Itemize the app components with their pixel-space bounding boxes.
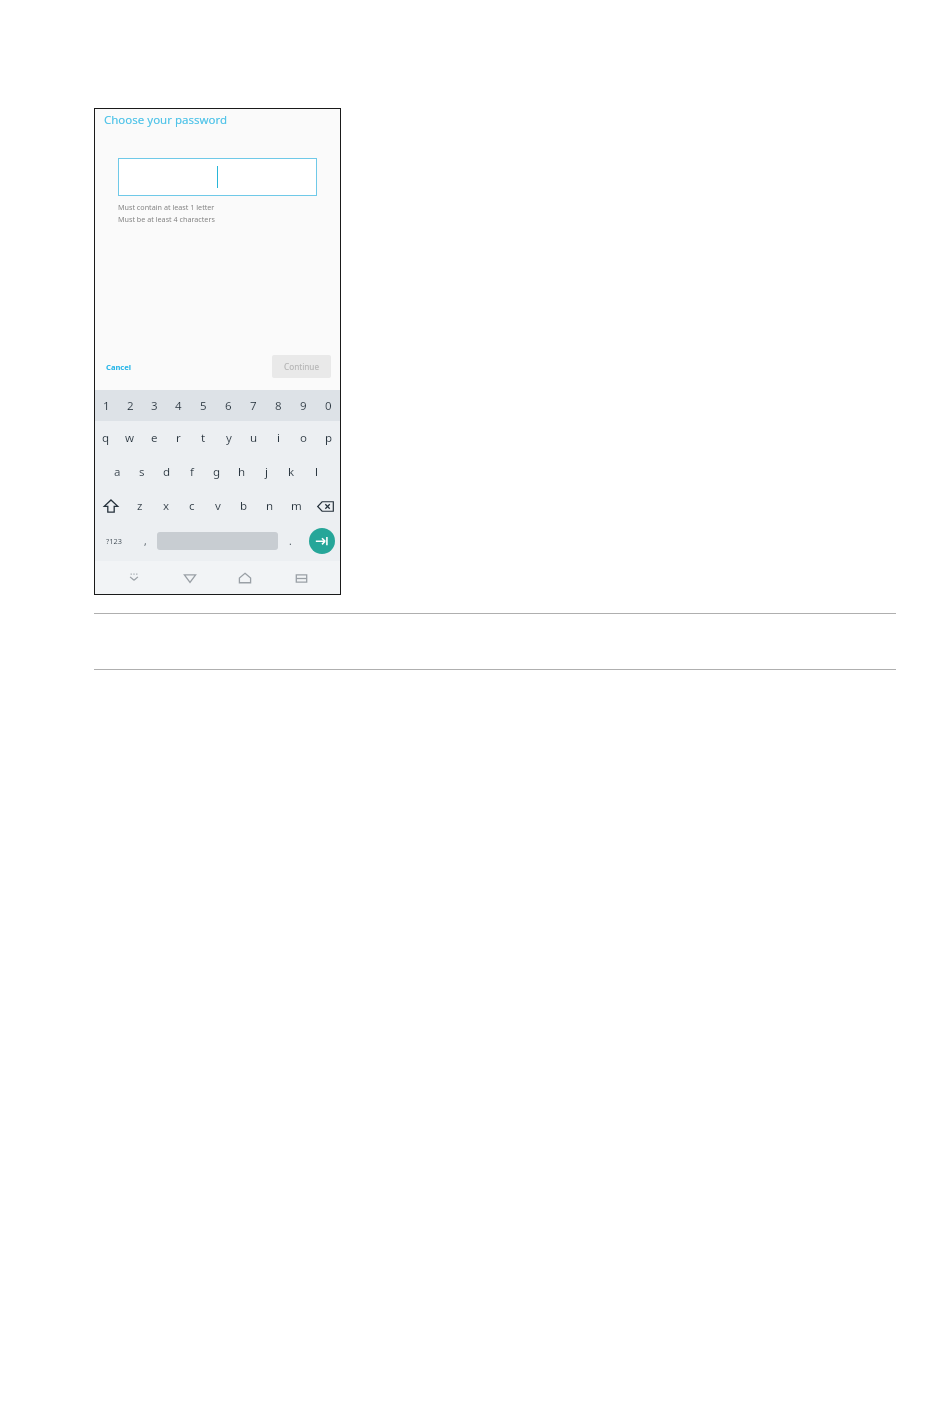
staticText: 5 xyxy=(200,398,207,414)
button[interactable]: b xyxy=(231,489,257,523)
staticText: Choose your password xyxy=(104,112,228,128)
button[interactable]: 2 xyxy=(118,390,142,421)
button[interactable]: Enter xyxy=(309,528,335,554)
staticText: , xyxy=(144,534,147,548)
staticText: z xyxy=(137,498,143,514)
staticText: k xyxy=(288,464,295,480)
button[interactable]: Recents xyxy=(285,562,317,594)
button[interactable]: m xyxy=(283,489,309,523)
staticText: 2 xyxy=(127,398,134,414)
button[interactable]: j xyxy=(254,455,279,489)
staticText: Continue xyxy=(284,361,319,372)
button[interactable]: l xyxy=(304,455,329,489)
button[interactable]: u xyxy=(241,421,266,455)
button[interactable]: 9 xyxy=(291,390,316,421)
button[interactable]: 1 xyxy=(94,390,118,421)
staticText: b xyxy=(240,498,248,514)
button[interactable]: s xyxy=(129,455,154,489)
button[interactable]: t xyxy=(191,421,216,455)
staticText: l xyxy=(315,464,318,480)
staticText: 9 xyxy=(300,398,307,414)
button[interactable]: x xyxy=(153,489,179,523)
staticText: w xyxy=(125,430,135,446)
button[interactable]: p xyxy=(316,421,341,455)
button[interactable]: z xyxy=(127,489,153,523)
staticText: . xyxy=(289,534,292,548)
button[interactable]: e xyxy=(142,421,166,455)
button[interactable]: ?123 xyxy=(94,523,133,559)
button[interactable] xyxy=(118,158,317,196)
staticText: v xyxy=(215,498,221,514)
button[interactable]: Hide keyboard xyxy=(118,562,150,594)
staticText: i xyxy=(277,430,280,446)
button[interactable]: i xyxy=(266,421,291,455)
button[interactable]: 6 xyxy=(216,390,241,421)
staticText: j xyxy=(265,464,268,480)
button[interactable]: 7 xyxy=(241,390,266,421)
button[interactable]: n xyxy=(257,489,283,523)
staticText: ?123 xyxy=(106,536,122,546)
button[interactable]: h xyxy=(229,455,254,489)
staticText: t xyxy=(201,430,206,446)
button[interactable]: Continue xyxy=(272,355,331,378)
staticText: Must be at least 4 characters xyxy=(118,214,215,224)
button[interactable]: 3 xyxy=(142,390,166,421)
staticText: g xyxy=(213,464,221,480)
staticText: 3 xyxy=(151,398,158,414)
staticText: d xyxy=(163,464,171,480)
button[interactable]: 0 xyxy=(316,390,341,421)
button[interactable]: v xyxy=(205,489,231,523)
button[interactable]: w xyxy=(118,421,142,455)
button[interactable]: Backspace xyxy=(309,489,341,523)
button[interactable]: . xyxy=(278,523,302,559)
staticText: 6 xyxy=(225,398,232,414)
button[interactable]: 4 xyxy=(166,390,191,421)
button[interactable]: c xyxy=(179,489,205,523)
button[interactable]: g xyxy=(204,455,229,489)
button[interactable]: o xyxy=(291,421,316,455)
staticText: h xyxy=(238,464,246,480)
button[interactable]: 5 xyxy=(191,390,216,421)
staticText: u xyxy=(250,430,258,446)
staticText: n xyxy=(266,498,274,514)
staticText: c xyxy=(189,498,195,514)
staticText: Must contain at least 1 letter xyxy=(118,202,215,212)
staticText: s xyxy=(139,464,145,480)
button[interactable]: , xyxy=(133,523,157,559)
button[interactable]: Shift xyxy=(94,489,127,523)
button[interactable]: a xyxy=(105,455,129,489)
staticText: m xyxy=(291,498,302,514)
button[interactable]: k xyxy=(279,455,304,489)
button[interactable]: Back xyxy=(174,562,206,594)
staticText: y xyxy=(226,430,232,446)
staticText: o xyxy=(300,430,307,446)
staticText: q xyxy=(102,430,110,446)
staticText: r xyxy=(176,430,181,446)
button[interactable]: q xyxy=(94,421,118,455)
staticText: 0 xyxy=(325,398,332,414)
button[interactable]: 8 xyxy=(266,390,291,421)
staticText: e xyxy=(151,430,158,446)
staticText: Cancel xyxy=(106,362,132,372)
button[interactable]: Cancel xyxy=(104,358,134,376)
staticText: a xyxy=(114,464,121,480)
button[interactable]: r xyxy=(166,421,191,455)
staticText: 4 xyxy=(175,398,182,414)
staticText: p xyxy=(325,430,333,446)
button[interactable]: d xyxy=(154,455,179,489)
staticText: 8 xyxy=(275,398,282,414)
button[interactable]: y xyxy=(216,421,241,455)
staticText: 1 xyxy=(103,398,110,414)
button[interactable]: f xyxy=(179,455,204,489)
staticText: f xyxy=(190,464,194,480)
staticText: 7 xyxy=(250,398,257,414)
staticText: x xyxy=(163,498,170,514)
button[interactable]: Home xyxy=(229,562,261,594)
